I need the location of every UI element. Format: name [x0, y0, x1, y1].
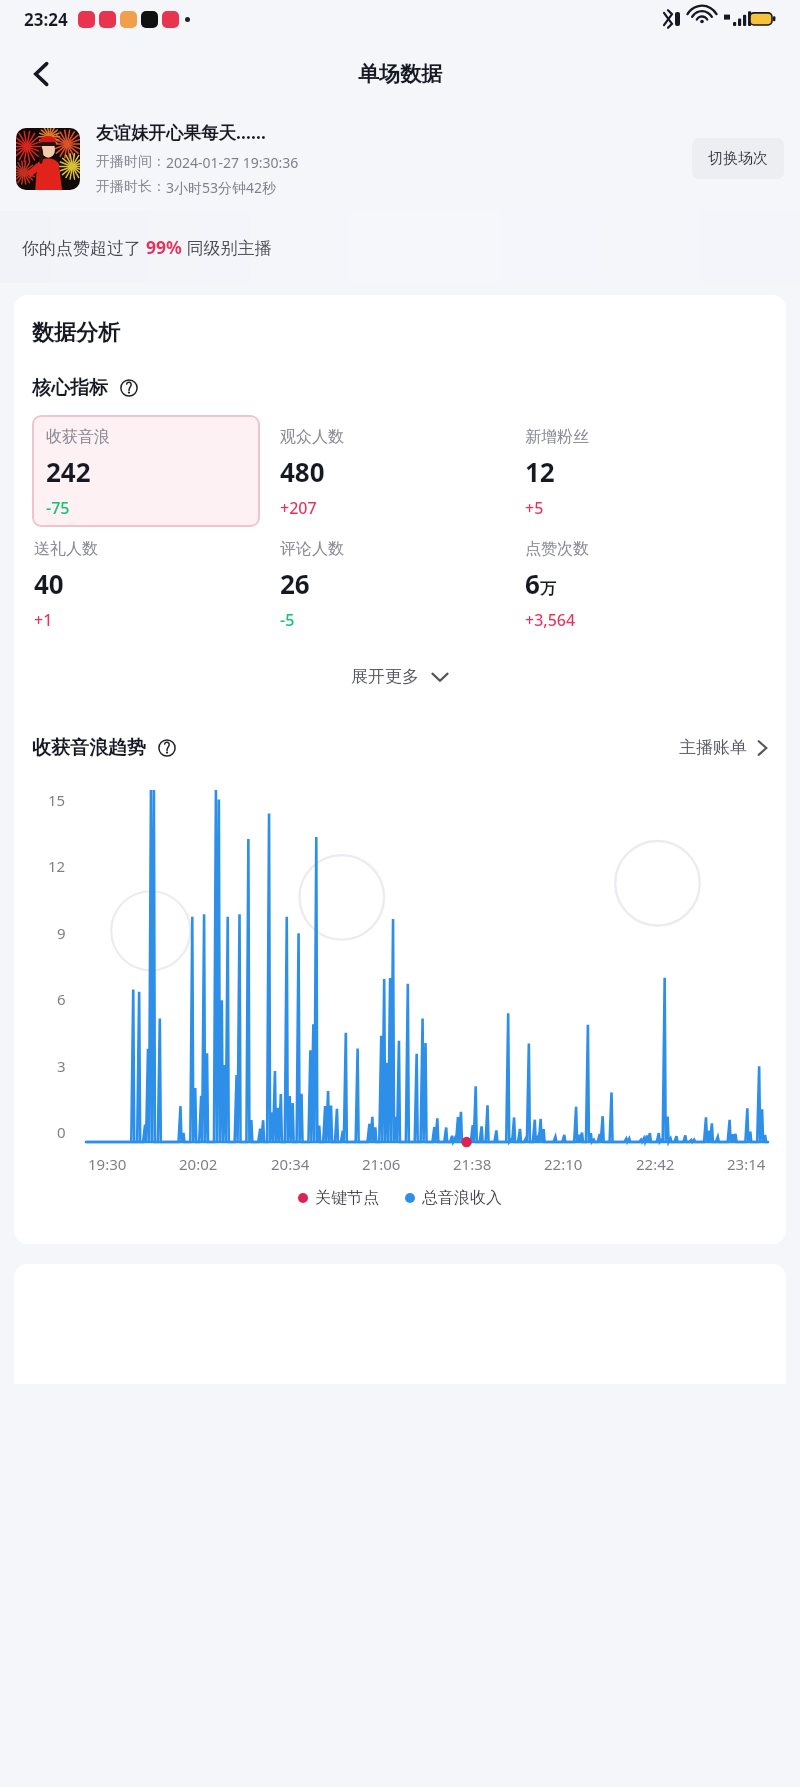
- staticText: 核心指标: [32, 376, 108, 400]
- button[interactable]: 新增粉丝: [523, 415, 768, 527]
- staticText: 同级别主播: [182, 236, 272, 259]
- staticText: 12: [525, 454, 555, 489]
- staticText: 新增粉丝: [525, 427, 589, 447]
- staticText: 2024-01-27 19:30:36: [166, 153, 299, 172]
- staticText: 21:38: [453, 1154, 492, 1174]
- staticText: -75: [46, 497, 70, 519]
- staticText: 22:10: [544, 1154, 583, 1174]
- button[interactable]: 收获音浪: [32, 415, 260, 527]
- staticText: 总音浪收入: [422, 1188, 502, 1208]
- staticText: 19:30: [88, 1154, 127, 1174]
- staticText: 23:24: [24, 8, 68, 31]
- staticText: 23:14: [727, 1154, 766, 1174]
- staticText: 242: [46, 454, 91, 489]
- staticText: +1: [34, 609, 53, 631]
- staticText: 0: [57, 1122, 66, 1142]
- button[interactable]: Help: [116, 375, 142, 401]
- staticText: 送礼人数: [34, 539, 98, 559]
- staticText: 切换场次: [708, 149, 768, 168]
- button[interactable]: Help: [154, 735, 180, 761]
- button[interactable]: 评论人数: [278, 527, 523, 639]
- staticText: 20:34: [271, 1154, 310, 1174]
- staticText: 9: [57, 923, 66, 943]
- staticText: +3,564: [525, 609, 576, 631]
- staticText: 20:02: [179, 1154, 218, 1174]
- button[interactable]: 观众人数: [278, 415, 523, 527]
- staticText: 主播账单: [679, 737, 747, 758]
- staticText: 3小时53分钟42秒: [166, 178, 277, 197]
- staticText: -5: [280, 609, 295, 631]
- button[interactable]: 展开更多: [335, 658, 465, 695]
- staticText: 99%: [146, 235, 182, 259]
- staticText: +5: [525, 497, 544, 519]
- staticText: 12: [48, 856, 66, 876]
- staticText: 展开更多: [351, 666, 419, 687]
- staticText: 关键节点: [315, 1188, 379, 1208]
- staticText: 开播时长：: [96, 178, 166, 196]
- staticText: 40: [34, 566, 64, 601]
- staticText: 单场数据: [358, 61, 442, 87]
- staticText: 3: [57, 1056, 66, 1076]
- staticText: 22:42: [636, 1154, 675, 1174]
- staticText: 15: [48, 790, 66, 810]
- button[interactable]: 主播账单: [679, 731, 768, 764]
- button[interactable]: 送礼人数: [32, 527, 278, 639]
- staticText: 点赞次数: [525, 539, 589, 559]
- staticText: 你的点赞超过了: [22, 236, 146, 259]
- staticText: 6: [525, 566, 540, 601]
- staticText: 21:06: [362, 1154, 401, 1174]
- staticText: 观众人数: [280, 427, 344, 447]
- staticText: 26: [280, 566, 310, 601]
- staticText: 480: [280, 454, 325, 489]
- staticText: 收获音浪: [46, 427, 110, 447]
- staticText: 开播时间：: [96, 153, 166, 171]
- staticText: 收获音浪趋势: [32, 736, 146, 760]
- button[interactable]: 点赞次数: [523, 527, 768, 639]
- button[interactable]: Back: [14, 46, 70, 102]
- button[interactable]: 切换场次: [692, 138, 784, 179]
- staticText: 评论人数: [280, 539, 344, 559]
- staticText: 万: [540, 579, 556, 599]
- staticText: 友谊妹开心果每天……: [96, 120, 266, 144]
- staticText: +207: [280, 497, 317, 519]
- staticText: 数据分析: [32, 319, 120, 347]
- staticText: 6: [57, 989, 66, 1009]
